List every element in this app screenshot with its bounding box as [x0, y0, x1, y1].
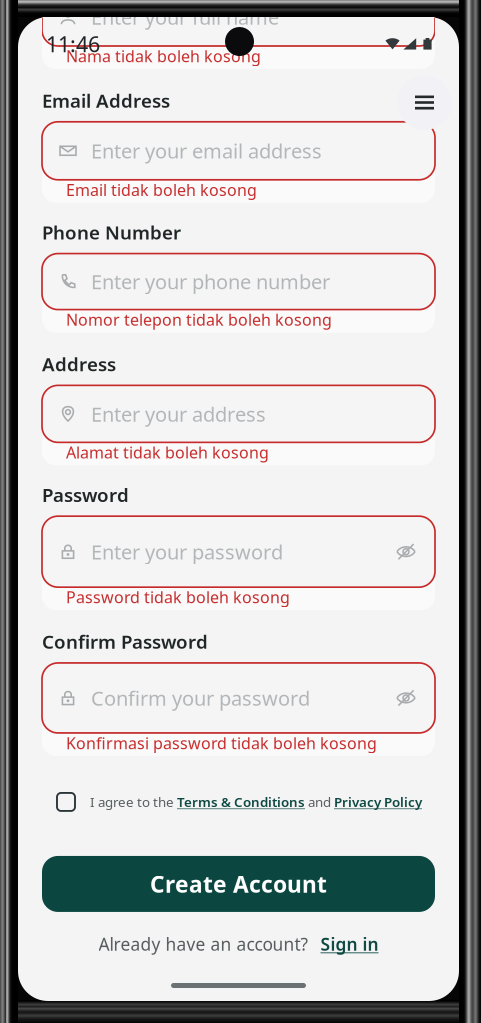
staticText: Enter your password: [91, 538, 283, 565]
staticText: Email Address: [42, 88, 170, 113]
staticText: Enter your phone number: [91, 268, 330, 295]
staticText: and: [305, 793, 334, 811]
staticText: Confirm Password: [42, 629, 208, 654]
staticText: Nama tidak boleh kosong: [66, 45, 261, 67]
staticText: I agree to the: [90, 793, 177, 811]
staticText: Address: [42, 352, 116, 376]
staticText: Enter your full name: [91, 4, 279, 30]
button[interactable]: Show password: [393, 685, 419, 711]
button[interactable]: Show password: [393, 539, 419, 565]
staticText: Create Account: [150, 869, 327, 899]
staticText: Enter your email address: [91, 137, 322, 164]
staticText: Already have an account?: [98, 932, 308, 955]
staticText: Enter your address: [91, 401, 266, 427]
staticText: Phone Number: [42, 220, 181, 245]
staticText: Confirm your password: [91, 685, 310, 711]
staticText: Privacy Policy: [334, 793, 422, 811]
button[interactable]: I agree to the: [42, 791, 435, 813]
staticText: Password: [42, 482, 129, 507]
staticText: Sign in: [320, 932, 378, 955]
staticText: 11:46: [46, 30, 100, 58]
button[interactable]: Menu: [397, 75, 452, 130]
staticText: Password tidak boleh kosong: [66, 586, 290, 608]
staticText: Alamat tidak boleh kosong: [66, 442, 269, 463]
button[interactable]: Create Account: [42, 856, 435, 912]
staticText: Konfirmasi password tidak boleh kosong: [66, 732, 377, 753]
staticText: Terms & Conditions: [177, 793, 305, 811]
staticText: Email tidak boleh kosong: [66, 179, 257, 200]
staticText: Nomor telepon tidak boleh kosong: [66, 309, 332, 330]
button[interactable]: Sign in: [320, 932, 378, 955]
